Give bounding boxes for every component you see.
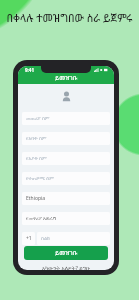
staticText: 9:41: [25, 67, 34, 73]
staticText: ስልክ: [41, 236, 50, 241]
button[interactable]: የተጠቃሚ ስም: [22, 172, 110, 185]
button[interactable]: Ethiopia: [22, 192, 110, 205]
staticText: ይመዝገቡ: [55, 249, 78, 257]
staticText: Ethiopia: [26, 195, 46, 202]
button[interactable]: የመኖሪያ አድራሻ: [22, 212, 110, 225]
button[interactable]: የአባት ስም: [22, 132, 110, 145]
staticText: የአባት ስም: [26, 135, 47, 142]
button[interactable]: ስልክ: [37, 232, 110, 245]
staticText: የተጠቃሚ ስም: [26, 175, 54, 182]
button[interactable]: +1: [22, 232, 35, 245]
staticText: የአያት ስም: [26, 155, 47, 162]
staticText: +1: [26, 235, 32, 242]
button[interactable]: መጠሪያ ስም: [22, 112, 110, 125]
staticText: የመኖሪያ አድራሻ: [26, 215, 57, 222]
staticText: ይመዝገቡ: [55, 74, 78, 82]
staticText: በቀላሉ ተመዝግበው ስራ ይጀምሩ: [0, 11, 139, 25]
staticText: መጠሪያ ስም: [26, 115, 50, 122]
button[interactable]: የአያት ስም: [22, 152, 110, 165]
staticText: አካውንት አለዎት? ይግቡ: [18, 264, 114, 270]
button[interactable]: ይመዝገቡ: [24, 246, 108, 260]
